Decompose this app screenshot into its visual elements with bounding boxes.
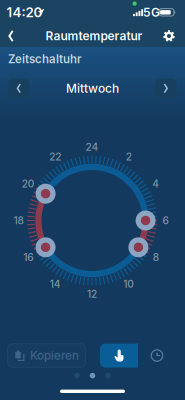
staticText: 12 — [87, 288, 97, 300]
staticText: 4 — [152, 178, 159, 190]
button[interactable]: Edit schedule — [100, 343, 138, 367]
staticText: 2 — [126, 151, 132, 163]
button[interactable]: Previous day — [8, 78, 30, 98]
button[interactable]: Mittwoch — [37, 78, 147, 98]
staticText: 22 — [49, 151, 61, 163]
staticText: 14 — [50, 278, 61, 290]
staticText: 10 — [123, 278, 134, 290]
staticText: Mittwoch — [66, 81, 119, 95]
staticText: 8 — [153, 251, 159, 263]
staticText: Raumtemperatur — [45, 29, 142, 43]
staticText: 6 — [162, 214, 168, 227]
staticText: 14:20 — [6, 4, 42, 20]
staticText: 20 — [22, 178, 35, 190]
button[interactable]: Back — [0, 24, 25, 48]
button[interactable]: Time list — [138, 343, 176, 367]
staticText: Kopieren — [30, 349, 79, 362]
button[interactable]: Settings — [155, 24, 183, 48]
staticText: 16 — [23, 251, 33, 263]
staticText: Zeitschaltuhr — [8, 52, 82, 66]
staticText: 18 — [13, 214, 23, 227]
staticText: 24 — [85, 141, 98, 153]
staticText: 5G — [143, 5, 160, 19]
button[interactable]: Next day — [155, 78, 177, 98]
button[interactable]: Kopieren — [8, 344, 86, 367]
